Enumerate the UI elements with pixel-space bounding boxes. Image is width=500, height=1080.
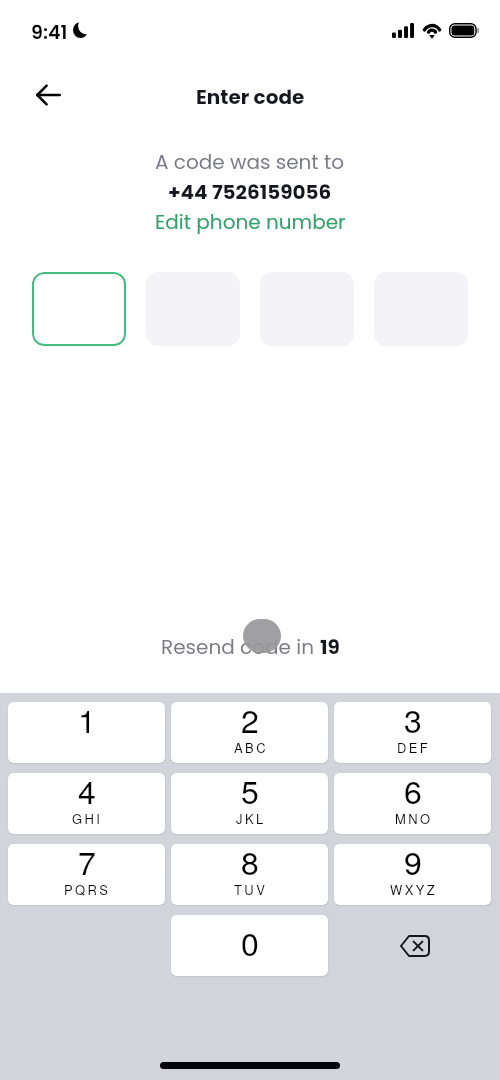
button[interactable]: Back xyxy=(26,71,70,115)
staticText: Edit phone number xyxy=(155,208,346,236)
staticText: 8 xyxy=(241,844,259,884)
staticText: 2 xyxy=(241,702,259,742)
button[interactable]: 9 xyxy=(334,844,491,905)
button[interactable]: 8 xyxy=(171,844,328,905)
staticText: PQRS xyxy=(64,880,111,899)
staticText: A code was sent to xyxy=(155,148,345,176)
button[interactable] xyxy=(32,272,126,346)
staticText: 19 xyxy=(320,633,340,661)
button[interactable]: 6 xyxy=(334,773,491,834)
staticText: ABC xyxy=(234,738,268,757)
staticText: GHI xyxy=(72,809,103,828)
staticText: 9 xyxy=(404,844,422,884)
button[interactable]: 3 xyxy=(334,702,491,763)
button[interactable]: 7 xyxy=(8,844,165,905)
staticText: DEF xyxy=(397,738,431,757)
staticText: 9:41 xyxy=(31,19,68,46)
button[interactable]: 4 xyxy=(8,773,165,834)
button[interactable]: 0 xyxy=(171,915,328,976)
button[interactable]: Edit phone number xyxy=(155,208,346,236)
button[interactable]: 2 xyxy=(171,702,328,763)
staticText: 6 xyxy=(404,773,422,813)
staticText: 4 xyxy=(78,773,96,813)
staticText: 0 xyxy=(241,919,259,965)
staticText: 5 xyxy=(241,773,259,813)
staticText: TUV xyxy=(234,880,268,899)
button[interactable]: 1 xyxy=(8,702,165,763)
staticText: MNO xyxy=(395,809,433,828)
staticText: Enter code xyxy=(196,83,305,111)
staticText: 7 xyxy=(78,844,96,884)
staticText: 3 xyxy=(404,702,422,742)
staticText: JKL xyxy=(236,809,266,828)
staticText: Resend code in xyxy=(161,633,320,661)
staticText: 1 xyxy=(78,702,96,742)
button[interactable]: Delete xyxy=(334,915,491,976)
button[interactable]: 5 xyxy=(171,773,328,834)
staticText: WXYZ xyxy=(390,880,438,899)
staticText: +44 7526159056 xyxy=(168,178,332,206)
